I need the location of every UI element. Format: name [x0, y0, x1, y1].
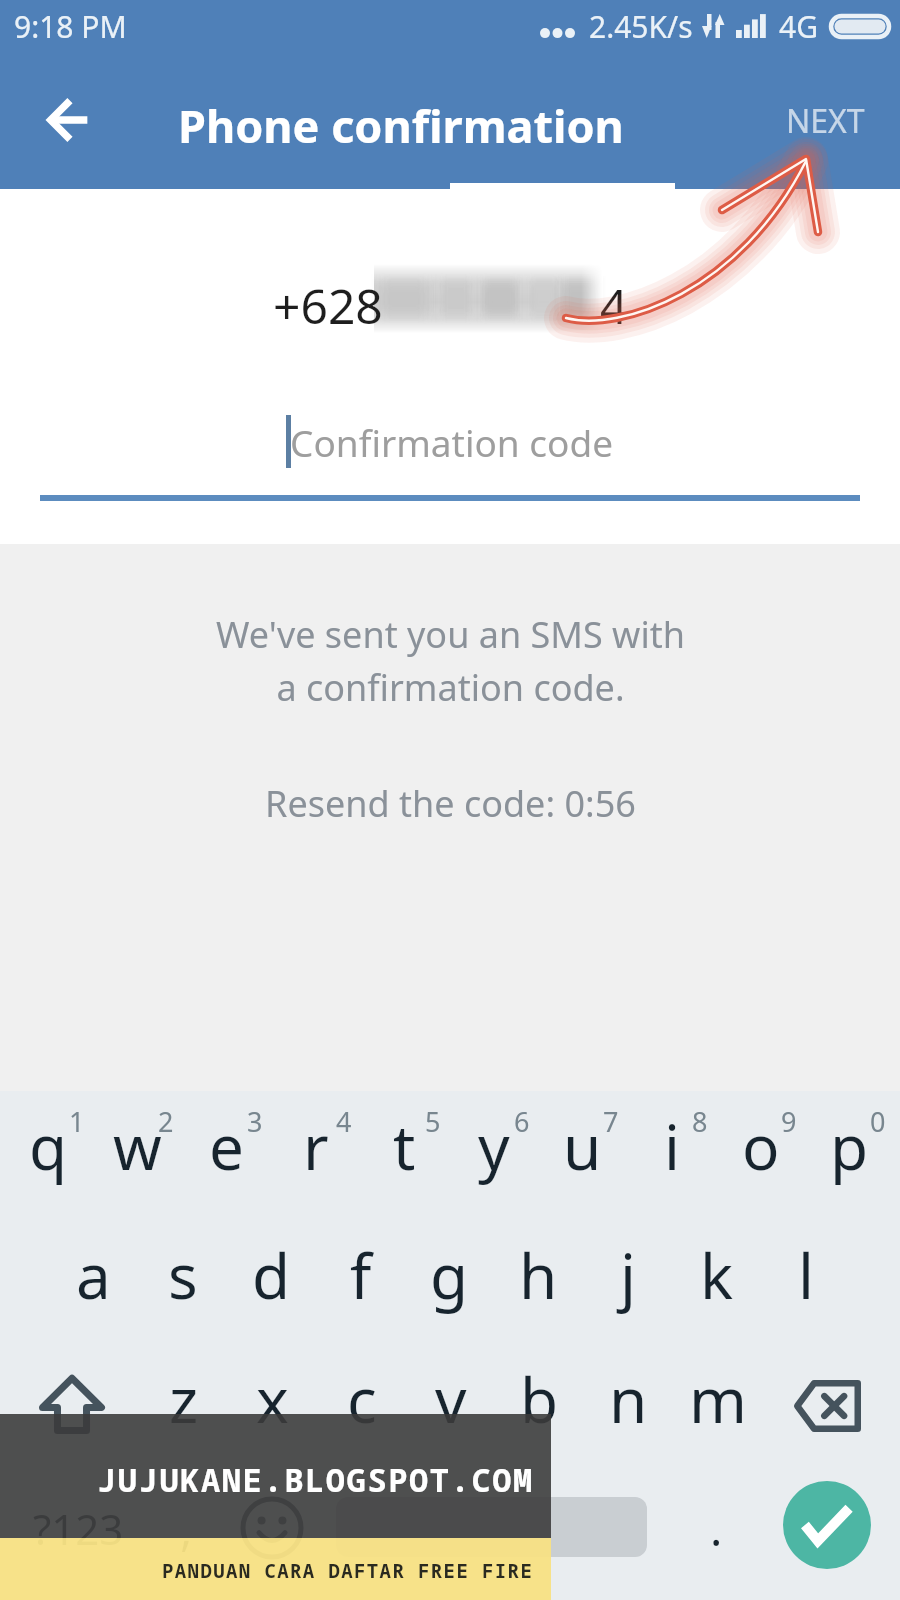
button[interactable]: , — [146, 1478, 226, 1578]
button[interactable]: z — [139, 1344, 228, 1454]
staticText: Resend the code: 0:56 — [265, 779, 636, 828]
staticText: ?123 — [33, 1500, 124, 1557]
staticText: 9 — [781, 1103, 797, 1137]
button[interactable]: y — [449, 1091, 538, 1201]
button[interactable]: v — [406, 1344, 495, 1454]
button[interactable]: u — [538, 1091, 627, 1201]
button[interactable]: Emoji — [227, 1483, 317, 1573]
staticText: c — [347, 1357, 377, 1441]
staticText: 0 — [870, 1103, 886, 1137]
staticText: 6 — [514, 1103, 530, 1137]
button[interactable]: o — [716, 1091, 805, 1201]
button[interactable]: x — [228, 1344, 317, 1454]
button[interactable]: m — [673, 1344, 762, 1454]
staticText: a — [76, 1233, 111, 1317]
button[interactable]: e — [182, 1091, 271, 1201]
staticText: 5 — [425, 1103, 441, 1137]
staticText: u — [563, 1104, 602, 1188]
staticText: t — [393, 1104, 416, 1188]
staticText: 4 — [600, 273, 628, 338]
button[interactable]: l — [761, 1220, 850, 1330]
staticText: l — [798, 1233, 814, 1317]
staticText: n — [609, 1357, 648, 1441]
button[interactable]: NEXT — [762, 88, 888, 154]
staticText: g — [430, 1233, 469, 1317]
staticText: , — [180, 1497, 193, 1560]
button[interactable]: k — [672, 1220, 761, 1330]
staticText: x — [256, 1357, 289, 1441]
staticText: d — [252, 1233, 291, 1317]
button[interactable]: h — [494, 1220, 583, 1330]
staticText: PANDUAN CARA DAFTAR FREE FIRE — [162, 1558, 534, 1584]
staticText: y — [478, 1104, 510, 1188]
staticText: e — [209, 1104, 244, 1188]
button[interactable]: c — [317, 1344, 406, 1454]
button[interactable]: b — [495, 1344, 584, 1454]
button[interactable]: Space — [336, 1497, 647, 1557]
staticText: We've sent you an SMS with a confirmatio… — [216, 610, 685, 711]
button[interactable]: q — [4, 1091, 93, 1201]
button[interactable]: a — [49, 1220, 138, 1330]
button[interactable]: Enter — [783, 1481, 871, 1569]
button[interactable]: Shift — [22, 1352, 122, 1456]
staticText: z — [169, 1357, 199, 1441]
staticText: m — [689, 1357, 747, 1441]
staticText: JUJUKANE.BLOGSPOT.COM — [97, 1458, 534, 1502]
staticText: q — [29, 1104, 68, 1188]
staticText: 4G — [779, 6, 818, 47]
staticText: j — [620, 1233, 636, 1317]
button[interactable]: i — [627, 1091, 716, 1201]
staticText: v — [435, 1357, 467, 1441]
staticText: o — [742, 1104, 780, 1188]
button[interactable]: s — [138, 1220, 227, 1330]
staticText: 1 — [69, 1103, 85, 1137]
button[interactable]: g — [405, 1220, 494, 1330]
button[interactable]: p — [805, 1091, 894, 1201]
button[interactable]: r — [271, 1091, 360, 1201]
staticText: f — [350, 1233, 372, 1317]
button[interactable]: . — [676, 1478, 756, 1578]
button[interactable]: w — [93, 1091, 182, 1201]
staticText: 2 — [158, 1103, 174, 1137]
staticText: b — [520, 1357, 559, 1441]
staticText: r — [303, 1104, 329, 1188]
button[interactable]: ?123 — [8, 1478, 148, 1578]
button[interactable]: Back — [37, 88, 101, 152]
button[interactable]: d — [227, 1220, 316, 1330]
staticText: i — [664, 1104, 680, 1188]
staticText: 3 — [247, 1103, 263, 1137]
staticText: 7 — [603, 1103, 619, 1137]
staticText: 9:18 PM — [14, 6, 127, 47]
staticText: h — [519, 1233, 558, 1317]
button[interactable]: f — [316, 1220, 405, 1330]
staticText: Confirmation code — [290, 417, 614, 467]
button[interactable]: j — [583, 1220, 672, 1330]
staticText: 8 — [692, 1103, 708, 1137]
button[interactable]: t — [360, 1091, 449, 1201]
staticText: k — [700, 1233, 734, 1317]
staticText: w — [113, 1104, 162, 1188]
button[interactable]: n — [584, 1344, 673, 1454]
button[interactable]: Backspace — [772, 1361, 882, 1451]
staticText: +628 — [273, 273, 383, 338]
staticText: Phone confirmation — [178, 95, 624, 156]
staticText: p — [830, 1104, 869, 1188]
staticText: 4 — [336, 1103, 352, 1137]
staticText: 2.45K/s — [589, 6, 693, 47]
staticText: NEXT — [786, 99, 865, 143]
staticText: . — [710, 1497, 723, 1560]
staticText: s — [168, 1233, 198, 1317]
